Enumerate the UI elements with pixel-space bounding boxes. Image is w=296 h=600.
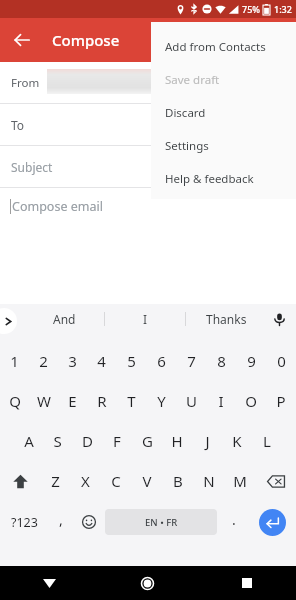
staticText: 4 <box>97 351 106 371</box>
button[interactable]: C <box>100 464 131 498</box>
staticText: . <box>232 510 236 529</box>
button[interactable]: Y <box>146 384 176 418</box>
staticText: , <box>59 510 63 529</box>
button[interactable]: Recents <box>197 566 296 600</box>
button[interactable]: 9 <box>236 344 266 378</box>
staticText: 8 <box>217 351 226 371</box>
button[interactable]: Backspace <box>255 464 296 498</box>
staticText: A <box>24 431 34 451</box>
button[interactable]: Help & feedback <box>151 162 296 195</box>
button[interactable]: V <box>131 464 162 498</box>
button[interactable]: Enter <box>248 502 296 542</box>
button[interactable]: Expand suggestions <box>0 308 17 334</box>
staticText: I <box>143 311 148 327</box>
button[interactable]: 0 <box>266 344 296 378</box>
button[interactable]: D <box>72 424 102 458</box>
button[interactable]: S <box>43 424 72 458</box>
button[interactable]: H <box>162 424 192 458</box>
button[interactable]: Compose email <box>0 188 296 224</box>
staticText: X <box>81 471 90 491</box>
button[interactable]: 1 <box>0 344 29 378</box>
staticText: L <box>263 431 271 451</box>
button[interactable]: A <box>14 424 43 458</box>
button[interactable]: Q <box>0 384 29 418</box>
button[interactable]: X <box>70 464 100 498</box>
staticText: 2 <box>39 351 48 371</box>
staticText: Thanks <box>206 311 247 327</box>
staticText: 9 <box>247 351 256 371</box>
button[interactable]: F <box>102 424 132 458</box>
button[interactable]: Voice input <box>266 306 292 332</box>
button[interactable]: Back <box>0 18 44 62</box>
staticText: 0 <box>277 351 286 371</box>
staticText: I <box>218 391 224 411</box>
staticText: E <box>68 391 77 411</box>
staticText: N <box>203 471 215 491</box>
staticText: EN • FR <box>145 516 178 529</box>
staticText: 1 <box>10 351 19 371</box>
button[interactable]: B <box>162 464 193 498</box>
button[interactable]: 4 <box>87 344 116 378</box>
staticText: G <box>142 431 153 451</box>
button[interactable]: R <box>87 384 116 418</box>
button[interactable]: G <box>132 424 162 458</box>
button[interactable]: Period <box>219 502 248 542</box>
button[interactable]: Home <box>98 566 197 600</box>
button[interactable]: Back <box>0 566 98 600</box>
staticText: H <box>171 431 183 451</box>
button[interactable]: Shift <box>0 464 40 498</box>
button[interactable]: Emoji <box>74 502 103 542</box>
staticText: 5 <box>127 351 136 371</box>
button[interactable]: 2 <box>29 344 58 378</box>
button[interactable]: 8 <box>206 344 236 378</box>
staticText: Add from Contacts <box>165 39 266 55</box>
button[interactable]: O <box>236 384 266 418</box>
button[interactable]: Subject <box>0 146 296 187</box>
button[interactable]: I <box>206 384 236 418</box>
staticText: ?123 <box>11 514 38 531</box>
staticText: P <box>276 391 286 411</box>
button[interactable]: Z <box>40 464 70 498</box>
button[interactable]: Add from Contacts <box>151 30 296 63</box>
button[interactable]: J <box>192 424 222 458</box>
staticText: M <box>233 471 247 491</box>
staticText: W <box>37 391 51 411</box>
staticText: Discard <box>165 105 206 121</box>
staticText: Q <box>9 391 21 411</box>
button[interactable]: U <box>176 384 206 418</box>
button[interactable]: L <box>252 424 282 458</box>
button[interactable]: I <box>105 304 185 334</box>
button[interactable]: K <box>222 424 252 458</box>
button[interactable]: T <box>116 384 146 418</box>
staticText: Y <box>157 391 166 411</box>
staticText: 7 <box>187 351 196 371</box>
button[interactable]: 5 <box>116 344 146 378</box>
button[interactable]: Save draft <box>151 63 296 96</box>
button[interactable]: To <box>0 104 296 145</box>
button[interactable]: Settings <box>151 129 296 162</box>
button[interactable]: P <box>266 384 296 418</box>
button[interactable]: ?123 <box>0 502 48 542</box>
button[interactable]: W <box>29 384 58 418</box>
button[interactable]: 3 <box>58 344 87 378</box>
button[interactable]: N <box>193 464 224 498</box>
staticText: Help & feedback <box>165 171 254 187</box>
staticText: K <box>232 431 242 451</box>
button[interactable]: M <box>224 464 255 498</box>
button[interactable]: Thanks <box>186 304 266 334</box>
staticText: D <box>82 431 93 451</box>
button[interactable]: Discard <box>151 96 296 129</box>
button[interactable]: And <box>24 304 104 334</box>
button[interactable]: Comma <box>48 502 74 542</box>
staticText: Save draft <box>165 72 220 88</box>
button[interactable]: 6 <box>146 344 176 378</box>
staticText: Compose email <box>12 198 103 215</box>
button[interactable]: From <box>0 62 296 103</box>
button[interactable]: E <box>58 384 87 418</box>
staticText: Z <box>51 471 60 491</box>
button[interactable]: 7 <box>176 344 206 378</box>
staticText: V <box>142 471 152 491</box>
button[interactable]: EN • FR <box>105 509 217 535</box>
staticText: 1:32 <box>274 3 292 15</box>
staticText: 3 <box>68 351 77 371</box>
